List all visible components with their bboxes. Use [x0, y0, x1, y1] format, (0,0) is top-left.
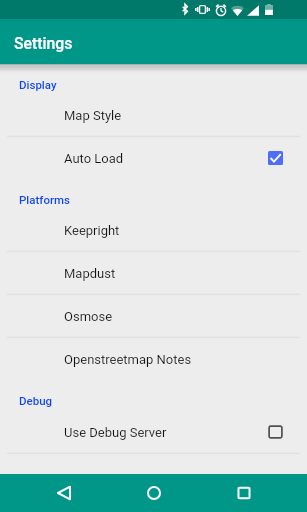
button[interactable]: Mapdust	[0, 251, 307, 294]
button[interactable]: Osmose	[0, 294, 307, 337]
staticText: Platforms	[19, 193, 70, 206]
button[interactable]: Openstreetmap Notes	[0, 337, 307, 380]
button[interactable]: Keepright	[0, 208, 307, 251]
staticText: Use Debug Server	[64, 425, 268, 440]
staticText: Map Style	[64, 108, 283, 123]
button[interactable]: Use Debug Server	[0, 410, 307, 453]
staticText: Mapdust	[64, 266, 283, 281]
staticText: Settings	[14, 34, 73, 53]
staticText: Display	[19, 78, 57, 91]
staticText: Keepright	[64, 223, 283, 238]
staticText: Openstreetmap Notes	[64, 352, 283, 367]
button[interactable]: Home	[147, 486, 161, 500]
staticText: Debug	[19, 394, 53, 407]
staticText: Osmose	[64, 309, 283, 324]
button[interactable]: Recents	[237, 486, 251, 500]
staticText: Auto Load	[64, 151, 268, 166]
button[interactable]: Auto Load	[0, 136, 307, 179]
button[interactable]: Map Style	[0, 93, 307, 136]
button[interactable]: Back	[57, 486, 71, 500]
